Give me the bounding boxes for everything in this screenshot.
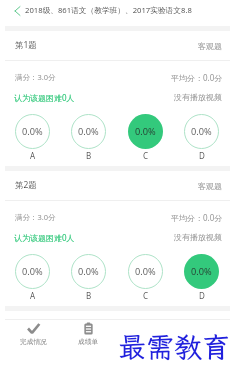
staticText: 0.0% — [22, 125, 43, 138]
staticText: C — [143, 290, 149, 301]
staticText: 满分：3.0分 — [15, 212, 56, 222]
staticText: 没有播放视频 — [174, 232, 222, 242]
staticText: 0.0% — [78, 125, 99, 138]
button[interactable]: Back — [8, 2, 26, 20]
staticText: B — [86, 290, 92, 301]
staticText: 2018级、861语文（教学班）、2017实验语文8.8 — [25, 5, 192, 16]
button[interactable]: 完成情况 — [6, 320, 61, 376]
staticText: 0.0% — [191, 265, 212, 278]
staticText: 认为该题困难0人 — [14, 232, 75, 243]
staticText: A — [30, 290, 36, 301]
button[interactable]: 成绩单 — [61, 320, 116, 376]
staticText: D — [199, 150, 205, 161]
staticText: 0.0% — [135, 265, 156, 278]
staticText: 认为该题困难0人 — [14, 92, 75, 103]
staticText: 成绩单 — [78, 338, 99, 346]
staticText: 客观题 — [198, 41, 222, 51]
staticText: 客观题 — [198, 181, 222, 191]
staticText: 没有播放视频 — [174, 92, 222, 102]
staticText: 第1题 — [15, 39, 37, 51]
staticText: A — [30, 150, 36, 161]
staticText: 平均分：0.0分 — [171, 212, 223, 222]
staticText: 平均分：0.0分 — [171, 72, 223, 82]
staticText: 第2题 — [15, 179, 37, 191]
staticText: 0.0% — [135, 125, 156, 138]
staticText: 满分：3.0分 — [15, 72, 56, 82]
staticText: 最需教育 — [118, 328, 231, 365]
staticText: 完成情况 — [20, 338, 47, 346]
staticText: C — [143, 150, 149, 161]
staticText: 0.0% — [78, 265, 99, 278]
staticText: 0.0% — [22, 265, 43, 278]
staticText: 0.0% — [191, 125, 212, 138]
staticText: B — [86, 150, 92, 161]
staticText: D — [199, 290, 205, 301]
